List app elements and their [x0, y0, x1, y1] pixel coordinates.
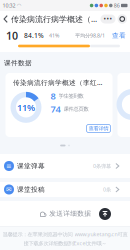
staticText: 86	[114, 2, 120, 9]
button[interactable]: 发送详细数据	[0, 201, 130, 225]
button[interactable]: 查看	[105, 27, 130, 44]
staticText: 发送详细数据	[49, 209, 91, 218]
staticText: 41%	[49, 32, 59, 39]
staticText: 8	[50, 90, 55, 102]
button[interactable]: Close	[115, 14, 130, 24]
staticText: 0条弹幕	[93, 162, 111, 170]
button[interactable]: ≡	[0, 154, 130, 178]
button[interactable]: 查看详情	[86, 124, 110, 132]
button[interactable]: ✉	[0, 182, 130, 197]
staticText: 课件总页数	[63, 106, 88, 112]
staticText: 温馨提示：在苹果浏览器中访问 www.yuketang.cn可直	[2, 231, 127, 238]
staticText: ◠	[17, 2, 22, 9]
staticText: 84.1%	[24, 31, 44, 40]
staticText: 传染病流行病学概述（李红…	[13, 78, 102, 87]
staticText: 查看详情	[88, 125, 108, 132]
staticText: 查看	[112, 31, 126, 40]
staticText: ≡	[6, 162, 12, 170]
staticText: 0条	[103, 186, 111, 193]
button[interactable]: Back	[0, 11, 11, 27]
staticText: 接下载多次详细数据到Excel文件哦～	[23, 240, 106, 247]
staticText: 平均分98.8/1	[75, 32, 105, 39]
staticText: 课堂投稿	[17, 185, 45, 194]
staticText: •••	[103, 15, 112, 23]
staticText: ✉	[6, 186, 12, 193]
staticText: 课堂弹幕	[17, 162, 45, 170]
staticText: 学生签到数	[58, 93, 83, 99]
button[interactable]: Scroll to top	[99, 208, 130, 220]
staticText: 11%	[17, 101, 35, 114]
staticText: 74	[50, 103, 60, 115]
staticText: 10	[6, 28, 18, 43]
staticText: 传染病流行病学概述（李红…	[11, 14, 98, 24]
staticText: 课件数据	[4, 59, 32, 67]
staticText: 10:32	[2, 2, 15, 9]
button[interactable]: More options	[100, 14, 115, 23]
